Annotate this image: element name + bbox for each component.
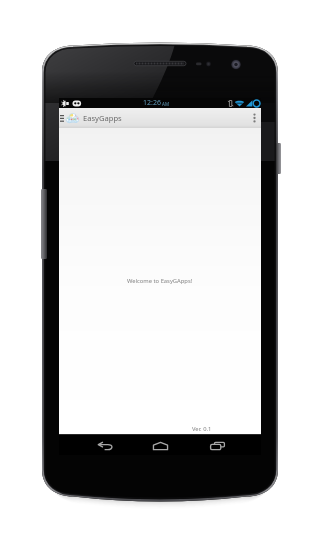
button[interactable]: Recent apps xyxy=(198,434,236,455)
button[interactable]: EasyGapps xyxy=(59,108,122,128)
staticText: Welcome to EasyGApps! xyxy=(127,277,193,285)
staticText: EasyGapps xyxy=(83,113,122,123)
staticText: 12:26 xyxy=(143,98,161,108)
staticText: Ver. 0.1 xyxy=(192,425,212,433)
staticText: AM xyxy=(162,101,169,107)
button[interactable]: Back xyxy=(86,434,124,455)
button[interactable]: More options xyxy=(247,108,261,128)
button[interactable]: Home xyxy=(141,434,179,455)
